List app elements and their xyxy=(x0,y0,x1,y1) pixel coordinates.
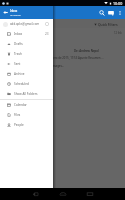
staticText: Scheduled xyxy=(14,82,29,86)
button[interactable]: Show All Folders xyxy=(0,89,53,99)
staticText: Inbox xyxy=(14,32,23,36)
button[interactable]: Calendar xyxy=(0,100,53,110)
button[interactable]: Drafts xyxy=(0,39,53,49)
button[interactable]: Archive xyxy=(0,69,53,79)
staticText: Drafts xyxy=(14,42,23,46)
button[interactable]: Sent xyxy=(0,59,53,69)
button[interactable]: People xyxy=(0,120,53,130)
button[interactable]: De: Andrew Nepol xyxy=(0,49,125,53)
staticText: 12 feb xyxy=(114,31,122,35)
button[interactable]: Inbox xyxy=(0,29,53,39)
staticText: Archive xyxy=(14,72,25,76)
button[interactable]: Scheduled xyxy=(0,79,53,89)
staticText: Sin messages… xyxy=(44,64,65,68)
button[interactable]: Search xyxy=(98,9,106,17)
button[interactable]: Trash xyxy=(0,49,53,59)
button[interactable]: Back xyxy=(3,10,8,15)
staticText: Show All Folders xyxy=(14,92,38,96)
button[interactable]: Back xyxy=(31,189,41,199)
button[interactable]: Quick Filters xyxy=(94,22,118,26)
staticText: Enviado, 30 de enero de 2015, 17:53 Apun… xyxy=(30,56,104,60)
staticText: 23 xyxy=(45,32,49,36)
staticText: De: Andrew Nepol xyxy=(74,49,99,53)
button[interactable]: add.apks@gmail.com xyxy=(0,19,53,29)
staticText: Files xyxy=(14,113,21,117)
button[interactable]: Files xyxy=(0,110,53,120)
button[interactable]: 12 feb xyxy=(0,28,125,38)
button[interactable]: Home xyxy=(58,189,68,199)
staticText: Trash xyxy=(14,52,22,56)
button[interactable]: More options xyxy=(116,9,124,17)
button[interactable]: Chat xyxy=(107,9,115,17)
staticText: add.apks@gmail.com xyxy=(10,22,40,26)
staticText: People xyxy=(14,123,24,127)
staticText: All Accounts xyxy=(10,14,21,17)
staticText: Inbox xyxy=(10,9,18,13)
staticText: Quick Filters xyxy=(98,22,118,26)
button[interactable]: Recents xyxy=(85,189,95,199)
staticText: Sent xyxy=(14,62,21,66)
staticText: 10:00 xyxy=(113,1,123,6)
staticText: Calendar xyxy=(14,103,27,107)
